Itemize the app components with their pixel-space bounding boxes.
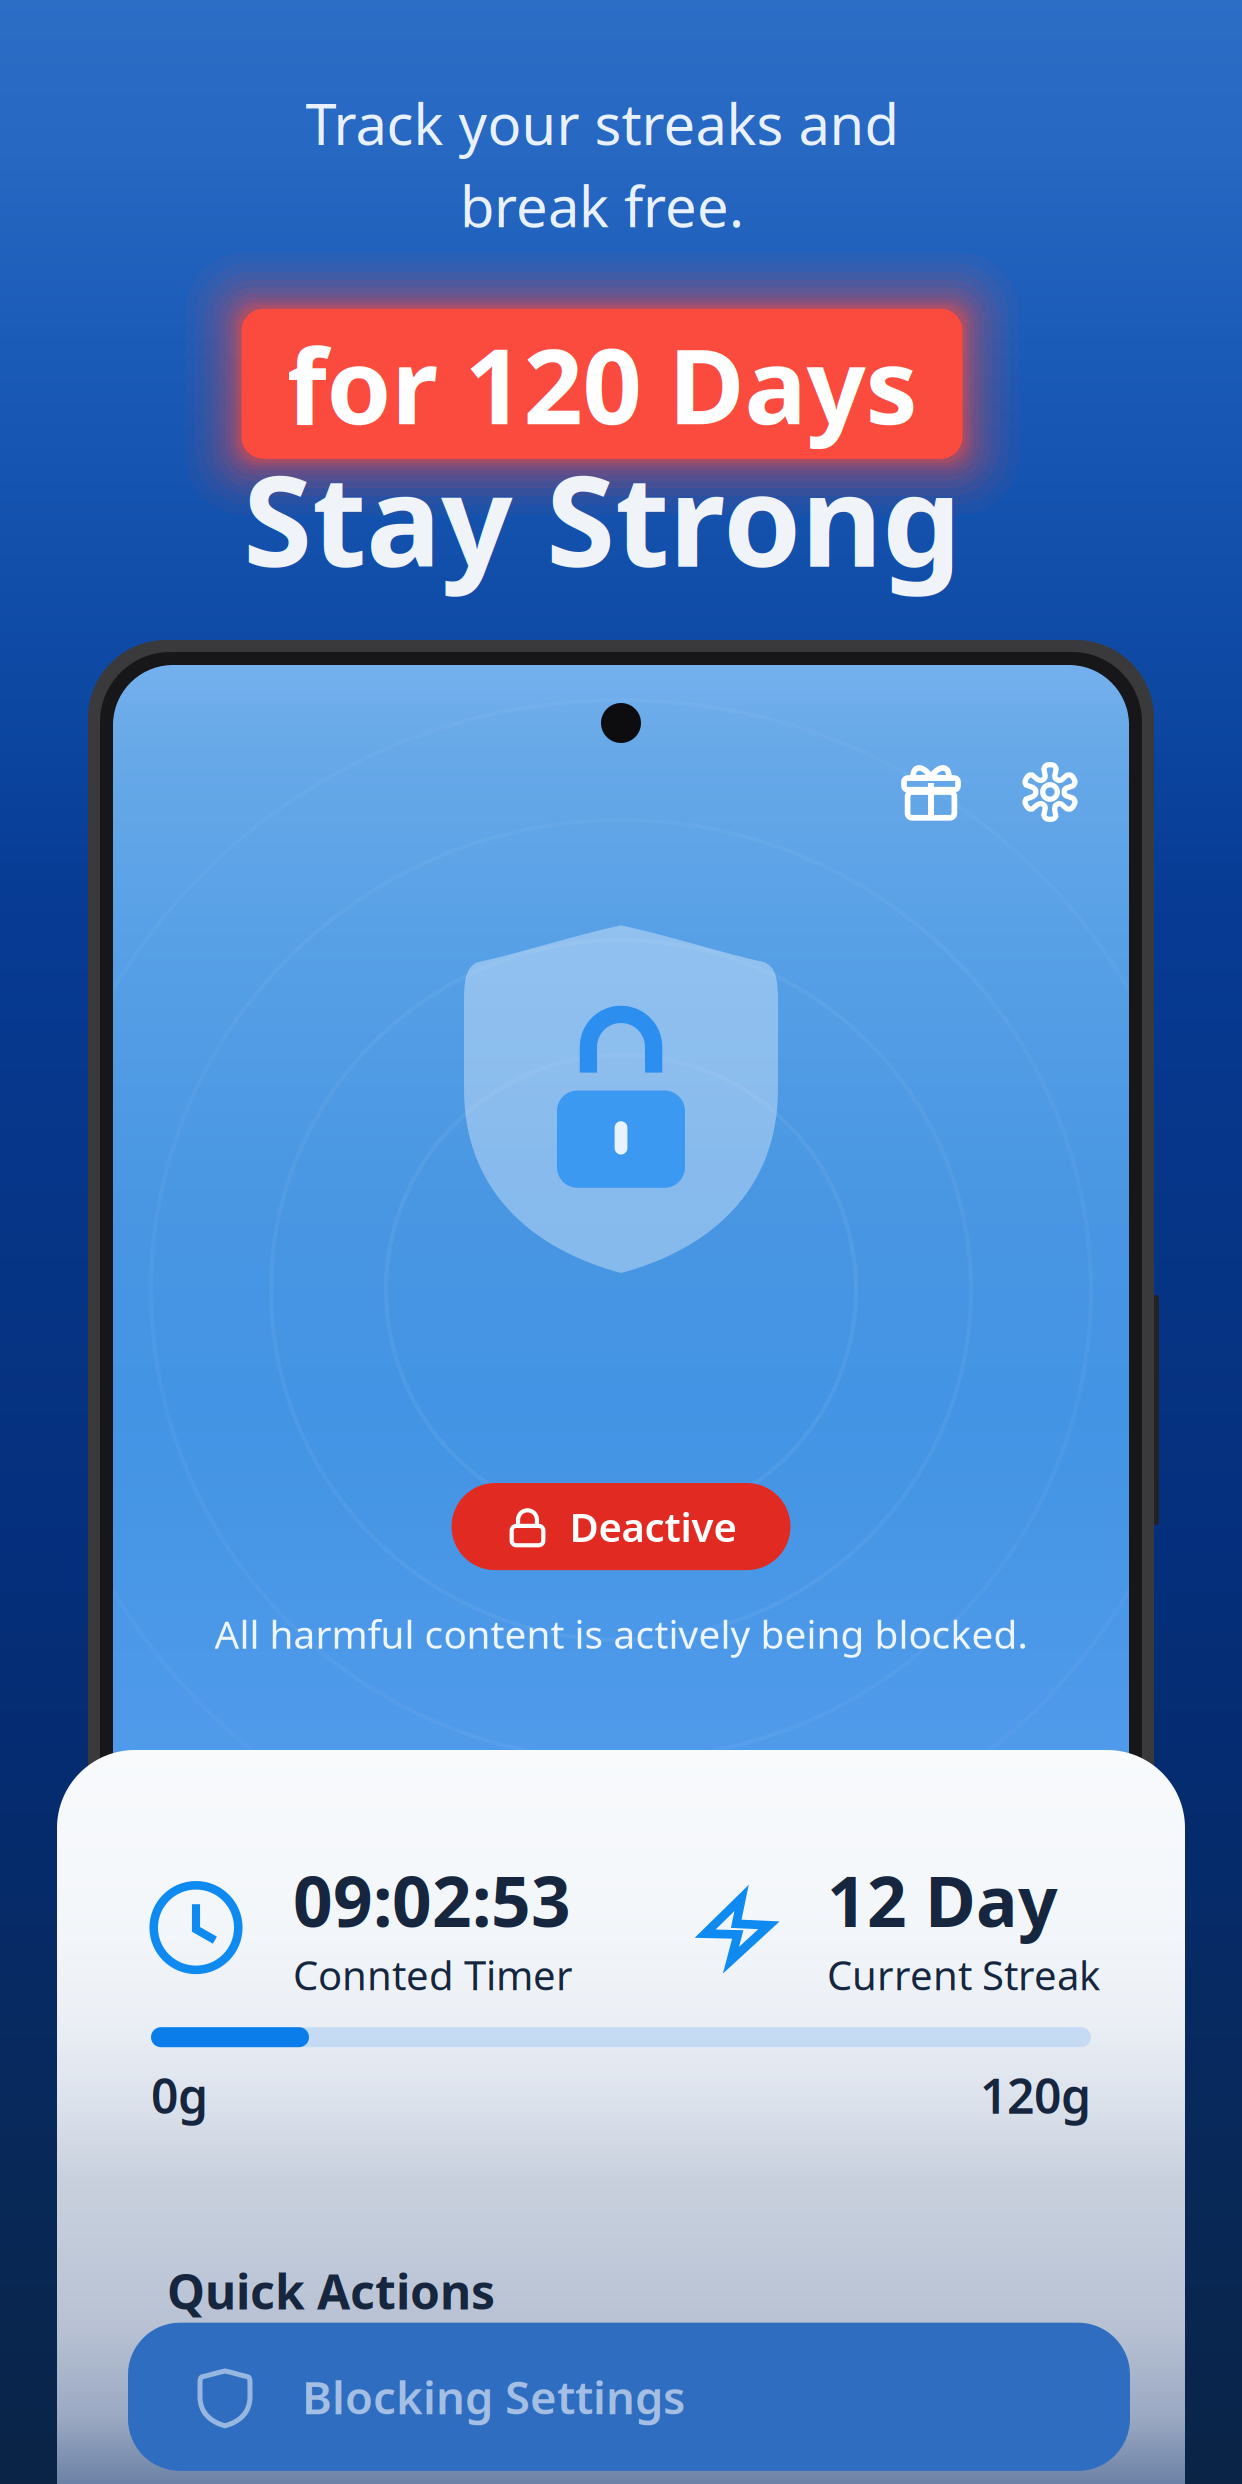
staticText: Current Streak [827,1948,1100,2001]
staticText: Blocking Settings [302,2367,685,2427]
button[interactable]: Settings [1013,755,1087,829]
staticText: Quick Actions [167,2259,495,2323]
staticText: All harmful content is actively being bl… [214,1608,1027,1659]
staticText: 09:02:53 [293,1854,571,1946]
button[interactable]: Deactive [451,1483,790,1570]
staticText: 12 Day [827,1854,1058,1946]
button[interactable]: Rewards [895,756,967,828]
staticText: 0g [151,2063,208,2127]
staticText: Stay Strong [243,435,961,601]
button[interactable]: Blocking Settings [128,2323,1130,2471]
staticText: for 120 Days [286,315,917,453]
staticText: break free. [460,168,744,243]
staticText: 120g [980,2063,1091,2127]
staticText: Track your streaks and [305,86,898,160]
staticText: Deactive [569,1500,736,1553]
staticText: Connted Timer [293,1948,573,2001]
